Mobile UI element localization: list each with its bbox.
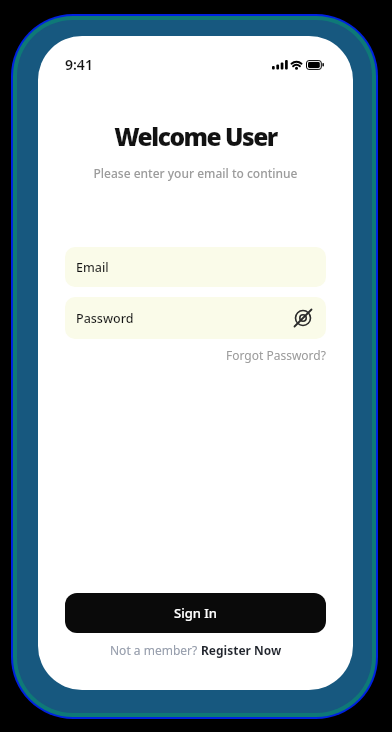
staticText: Email [76, 259, 109, 276]
button[interactable] [292, 307, 314, 329]
button[interactable]: Register Now [201, 642, 282, 658]
button[interactable]: Password [65, 297, 326, 339]
button[interactable]: Email [65, 247, 326, 287]
staticText: 9:41 [65, 55, 93, 74]
staticText: Password [76, 310, 134, 327]
staticText: Welcome User [38, 120, 353, 153]
staticText: Sign In [174, 604, 218, 622]
staticText: Please enter your email to continue [38, 165, 353, 181]
button[interactable]: Forgot Password? [226, 347, 326, 363]
staticText: Not a member? [110, 642, 201, 658]
button[interactable]: Sign In [65, 593, 326, 633]
